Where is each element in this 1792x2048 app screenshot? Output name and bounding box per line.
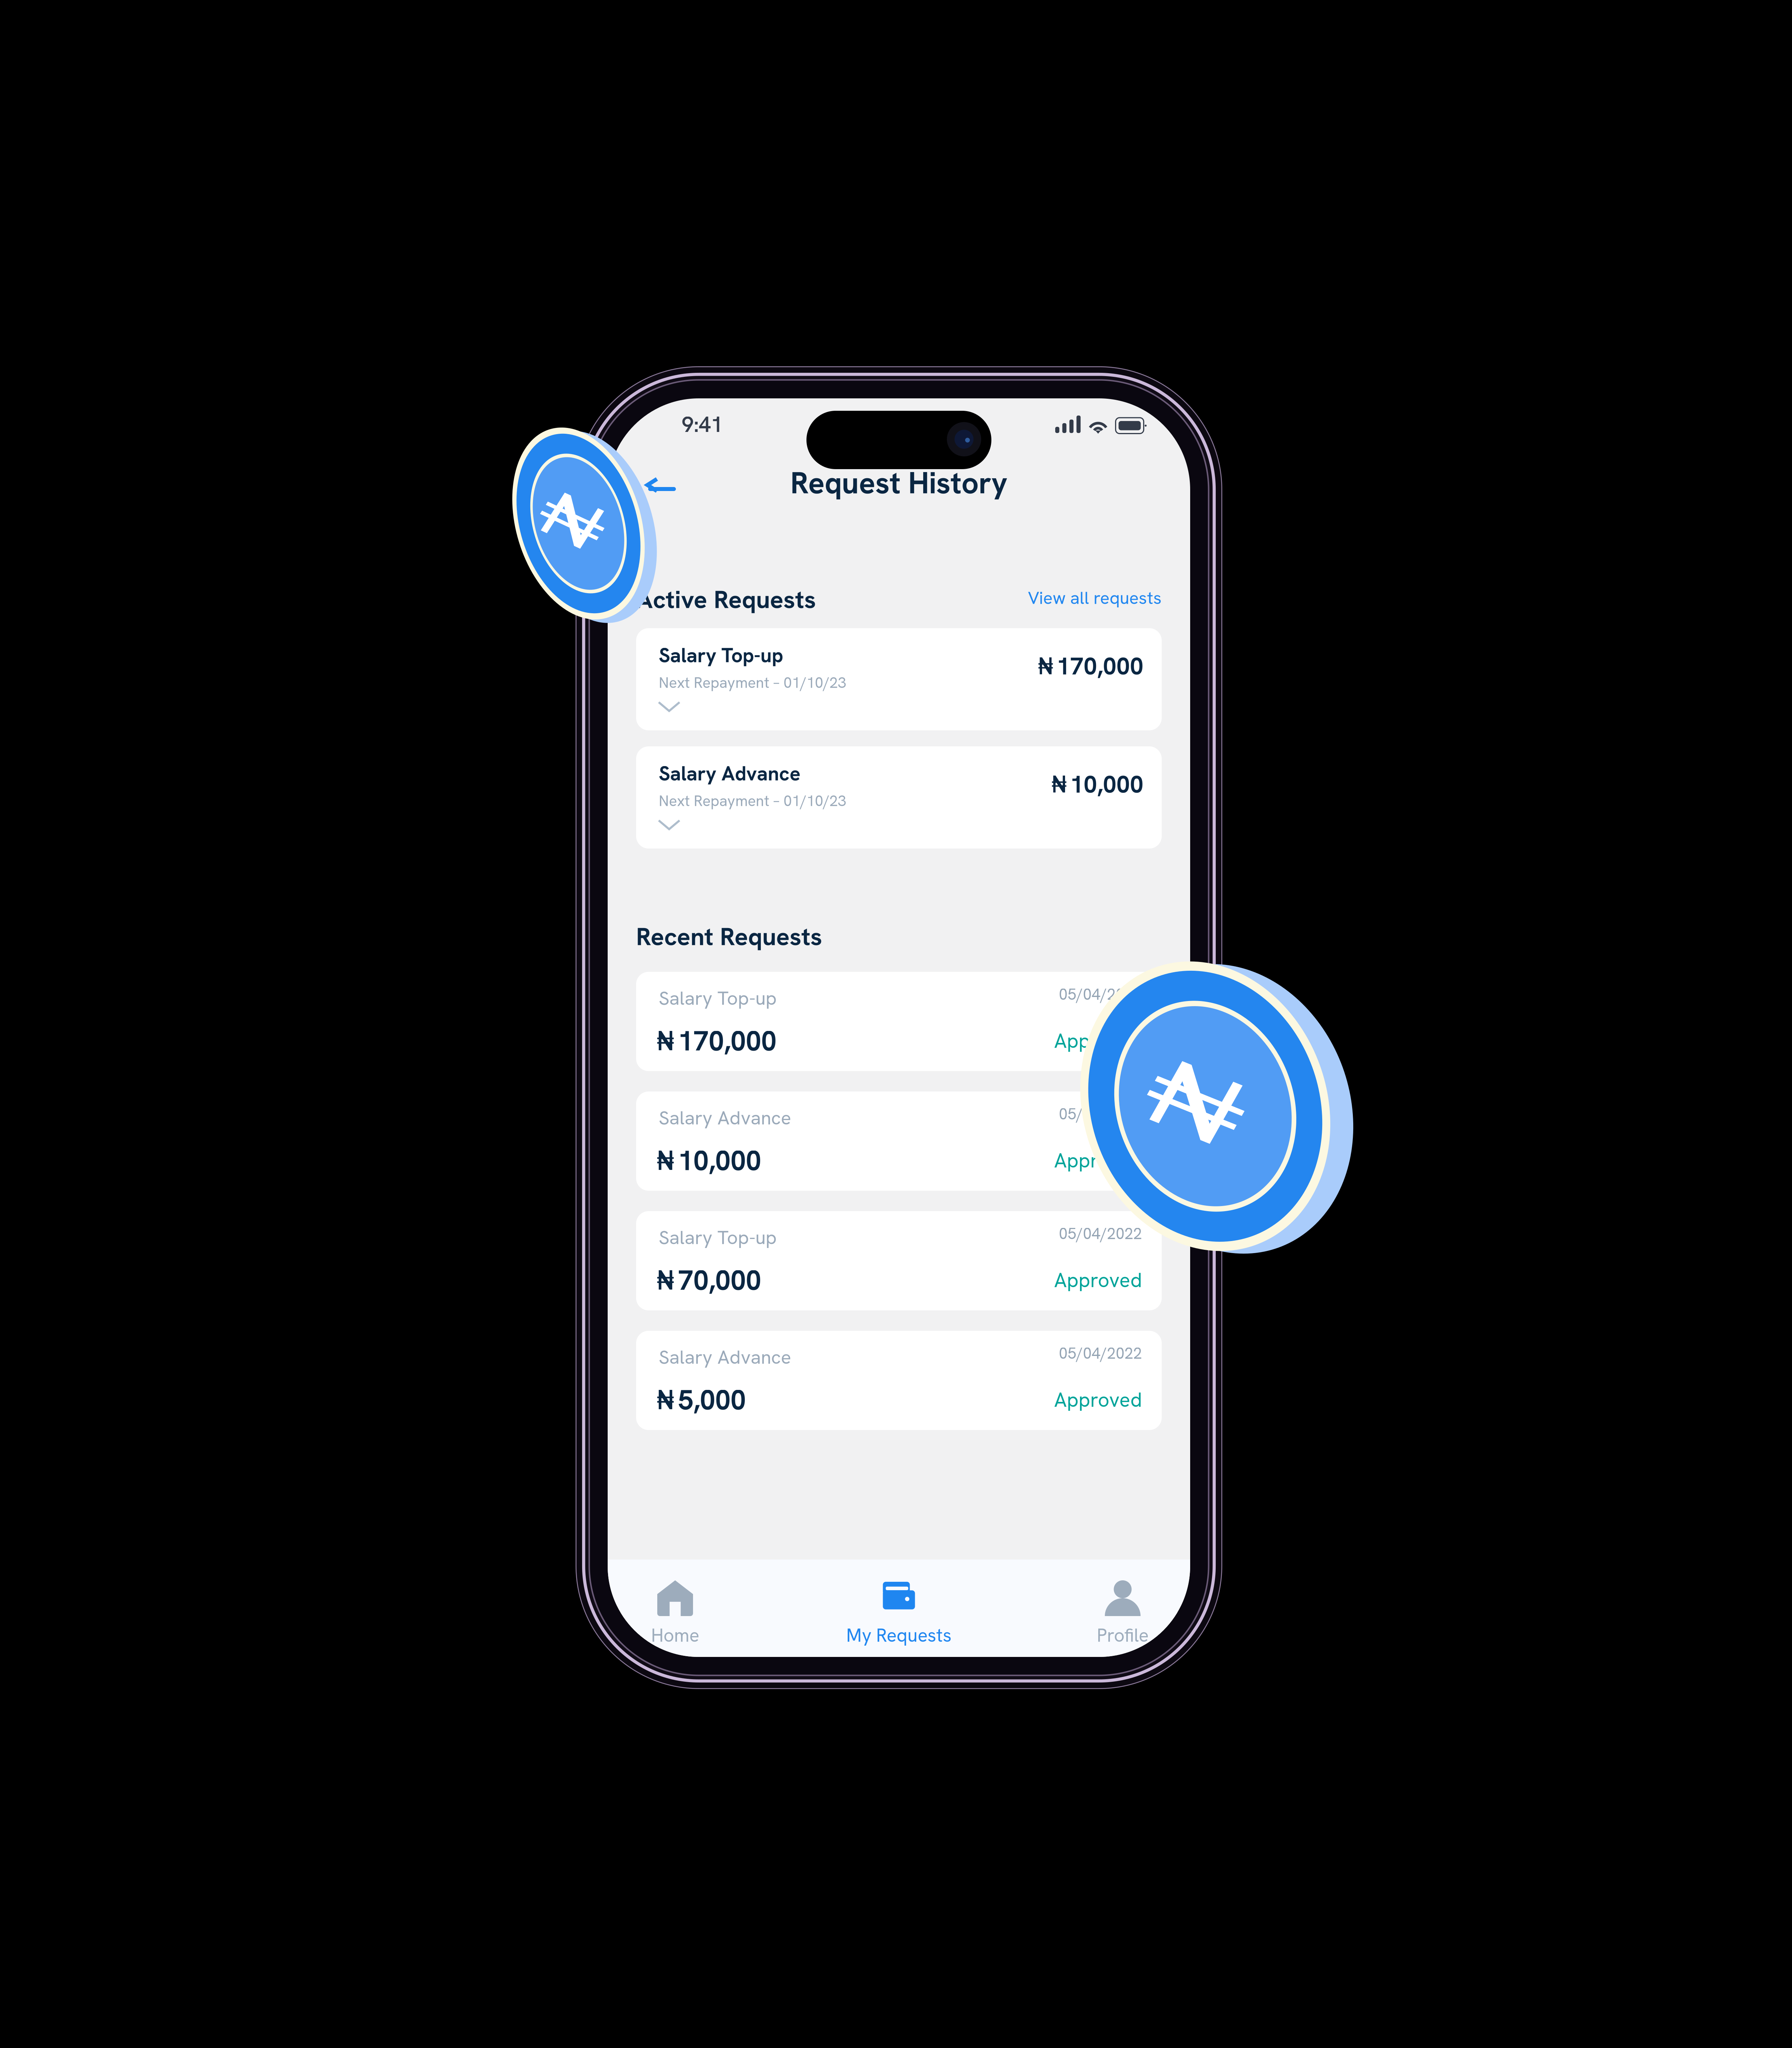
- button[interactable]: Home: [620, 1560, 730, 1647]
- button[interactable]: View all requests: [1028, 586, 1162, 609]
- staticText: Active Requests: [636, 583, 816, 616]
- staticText: My Requests: [846, 1623, 952, 1647]
- staticText: 10,000: [1070, 769, 1143, 800]
- staticText: Request History: [790, 463, 1007, 502]
- staticText: 05/04/2022: [1059, 984, 1142, 1004]
- staticText: 05/04/2022: [1059, 1104, 1142, 1124]
- button[interactable]: Salary Top-up: [636, 628, 1162, 730]
- button[interactable]: Salary Advance: [636, 1331, 1162, 1430]
- staticText: 70,000: [678, 1263, 761, 1298]
- staticText: Home: [651, 1623, 699, 1647]
- staticText: Approved: [1054, 1147, 1142, 1173]
- staticText: Salary Advance: [659, 760, 801, 786]
- staticText: Approved: [1054, 1267, 1142, 1293]
- staticText: Salary Top-up: [659, 986, 777, 1011]
- staticText: Next Repayment – 01/10/23: [659, 791, 846, 811]
- staticText: 5,000: [678, 1382, 746, 1418]
- staticText: 05/04/2022: [1059, 1343, 1142, 1363]
- button[interactable]: Salary Top-up: [636, 1211, 1162, 1310]
- button[interactable]: Salary Advance: [636, 746, 1162, 849]
- staticText: 9:41: [682, 411, 723, 438]
- staticText: Salary Advance: [659, 1345, 791, 1370]
- staticText: Approved: [1054, 1028, 1142, 1054]
- staticText: Salary Top-up: [659, 1225, 777, 1250]
- button[interactable]: Back: [647, 479, 677, 491]
- staticText: Salary Advance: [659, 1105, 791, 1130]
- staticText: 170,000: [678, 1023, 777, 1059]
- button[interactable]: Salary Advance: [636, 1091, 1162, 1191]
- button[interactable]: Profile: [1068, 1560, 1177, 1647]
- staticText: Recent Requests: [636, 920, 822, 953]
- button[interactable]: My Requests: [839, 1560, 959, 1647]
- staticText: 10,000: [678, 1143, 761, 1178]
- staticText: Next Repayment – 01/10/23: [659, 673, 846, 692]
- staticText: Approved: [1054, 1387, 1142, 1413]
- staticText: Salary Top-up: [659, 642, 783, 668]
- staticText: 170,000: [1057, 651, 1143, 682]
- staticText: 05/04/2022: [1059, 1224, 1142, 1244]
- staticText: Profile: [1097, 1623, 1149, 1647]
- staticText: View all requests: [1028, 586, 1162, 609]
- button[interactable]: Salary Top-up: [636, 972, 1162, 1071]
